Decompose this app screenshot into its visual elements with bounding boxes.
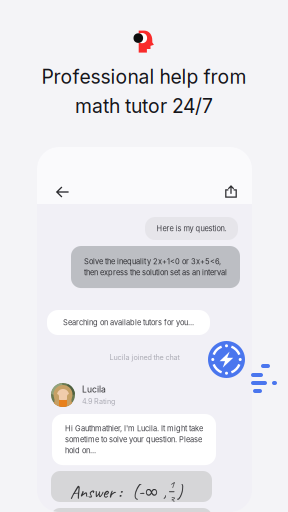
staticText: math tutor 24/7 (75, 94, 213, 118)
staticText: 3 (169, 492, 174, 506)
staticText: Lucila joined the chat (109, 353, 179, 362)
staticText: Searching on available tutors for you... (63, 318, 194, 327)
staticText: then express the solution set as an inte… (84, 268, 227, 277)
staticText: sometime to solve your question. Please (65, 435, 202, 444)
staticText: Lucila (82, 384, 106, 394)
staticText: (-∞ , (132, 480, 167, 503)
staticText: 4.9 Rating (82, 397, 115, 406)
staticText: Hi Gauthmathier, I'm Lucila. It might ta… (65, 424, 203, 433)
staticText: Professional help from (41, 65, 246, 88)
staticText: Here is my question. (156, 224, 226, 233)
staticText: hold on... (65, 446, 96, 455)
staticText: Solve the inequality 2x+1<0 or 3x+5<6, (84, 257, 221, 266)
staticText: Answer : (70, 480, 122, 503)
staticText: 1 (169, 477, 174, 491)
staticText: ) (176, 480, 182, 503)
